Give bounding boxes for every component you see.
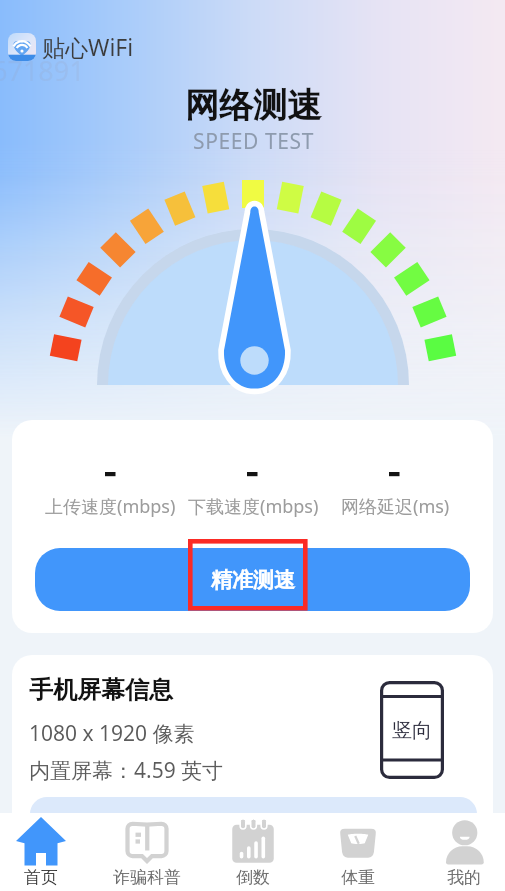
staticText: 手机屏幕信息 xyxy=(29,675,173,705)
staticText: SPEED TEST xyxy=(193,127,314,156)
staticText: 我的 xyxy=(447,867,481,888)
staticText: 竖向 xyxy=(392,718,432,743)
staticText: 内置屏幕：4.59 英寸 xyxy=(29,756,224,785)
staticText: 首页 xyxy=(24,867,58,888)
button[interactable]: Countdown xyxy=(212,813,294,891)
button[interactable]: Profile xyxy=(423,813,505,891)
staticText: 贴心WiFi xyxy=(42,31,134,62)
staticText: 倒数 xyxy=(236,867,270,888)
button[interactable]: 精准测速 xyxy=(35,548,470,611)
staticText: 网络测速 xyxy=(185,84,321,127)
staticText: 网络延迟(ms) xyxy=(341,494,450,519)
staticText: 诈骗科普 xyxy=(113,867,181,888)
staticText: 下载速度(mbps) xyxy=(188,494,319,519)
staticText: 671891 xyxy=(0,52,85,89)
button[interactable]: Fraud info xyxy=(106,813,188,891)
staticText: 体重 xyxy=(341,867,375,888)
button[interactable]: Weight xyxy=(317,813,399,891)
staticText: 上传速度(mbps) xyxy=(45,494,176,519)
staticText: 1080 x 1920 像素 xyxy=(29,719,195,748)
button[interactable]: Home xyxy=(0,813,82,891)
staticText: 精准测速 xyxy=(211,567,295,593)
